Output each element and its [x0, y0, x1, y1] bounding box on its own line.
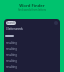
staticText: find words from letters	[0, 8, 64, 12]
button[interactable]: Shuffle	[54, 21, 58, 25]
staticText: resulting	[6, 65, 17, 69]
staticText: resulting	[6, 47, 17, 51]
staticText: resulting	[6, 41, 17, 45]
staticText: resulting	[6, 53, 17, 57]
button[interactable]	[5, 35, 14, 37]
staticText: resulting	[6, 59, 17, 63]
button[interactable]: Search	[6, 21, 16, 25]
staticText: 3 letter words	[6, 27, 23, 31]
staticText: Search	[6, 21, 15, 25]
staticText: Word Finder	[0, 3, 64, 9]
